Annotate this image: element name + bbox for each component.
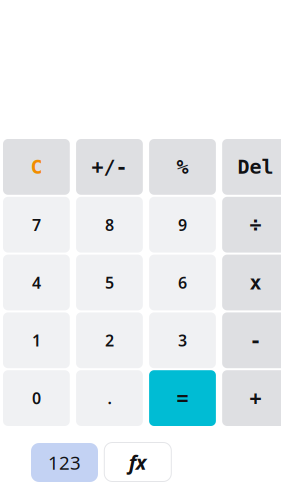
- staticText: ÷: [249, 213, 261, 236]
- staticText: 4: [32, 272, 41, 293]
- staticText: 123: [48, 450, 81, 475]
- button[interactable]: 0: [3, 370, 70, 426]
- button[interactable]: 2: [76, 312, 143, 368]
- button[interactable]: =: [149, 370, 216, 426]
- staticText: 2: [105, 330, 114, 351]
- staticText: x: [249, 271, 261, 294]
- staticText: .: [107, 387, 111, 409]
- button[interactable]: +/-: [76, 139, 143, 195]
- button[interactable]: x: [222, 255, 281, 310]
- staticText: 0: [32, 387, 41, 409]
- staticText: -: [249, 329, 261, 352]
- button[interactable]: 3: [149, 312, 216, 368]
- button[interactable]: C: [3, 139, 70, 195]
- button[interactable]: 4: [3, 255, 70, 310]
- staticText: 1: [32, 330, 41, 351]
- button[interactable]: 9: [149, 197, 216, 253]
- button[interactable]: .: [76, 370, 143, 426]
- button[interactable]: 5: [76, 255, 143, 310]
- staticText: +/-: [91, 156, 127, 178]
- staticText: 7: [32, 214, 41, 235]
- button[interactable]: -: [222, 312, 281, 368]
- button[interactable]: 123: [31, 443, 98, 482]
- staticText: 6: [178, 272, 187, 293]
- staticText: +: [249, 387, 261, 409]
- button[interactable]: 6: [149, 255, 216, 310]
- button[interactable]: Del: [222, 139, 281, 195]
- staticText: 9: [178, 214, 187, 235]
- button[interactable]: +: [222, 370, 281, 426]
- button[interactable]: fx: [104, 442, 171, 481]
- staticText: =: [176, 387, 188, 409]
- button[interactable]: 7: [3, 197, 70, 253]
- button[interactable]: 8: [76, 197, 143, 253]
- staticText: C: [30, 156, 42, 178]
- button[interactable]: %: [149, 139, 216, 195]
- staticText: fx: [129, 449, 147, 475]
- staticText: 5: [105, 272, 114, 293]
- staticText: %: [176, 156, 188, 178]
- staticText: 3: [178, 330, 187, 351]
- button[interactable]: 1: [3, 312, 70, 368]
- staticText: 8: [105, 214, 114, 235]
- button[interactable]: ÷: [222, 197, 281, 253]
- staticText: Del: [237, 156, 273, 178]
